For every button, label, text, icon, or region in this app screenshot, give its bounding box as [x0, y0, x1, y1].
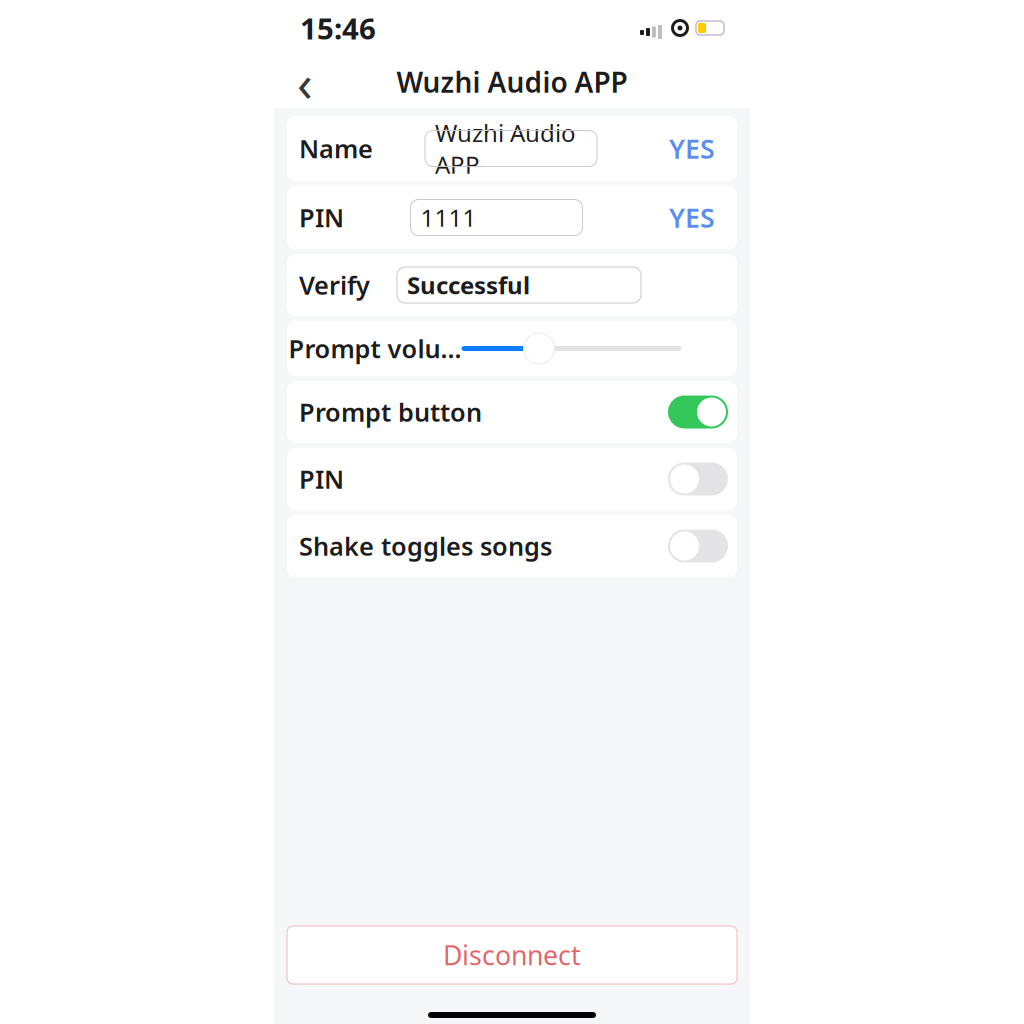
staticText: Prompt volu...	[288, 332, 461, 365]
staticText: 1111	[420, 202, 476, 233]
staticText: Name	[299, 132, 373, 165]
staticText: PIN	[299, 462, 344, 496]
button[interactable]: Shake toggles songs	[287, 515, 737, 577]
staticText: YES	[669, 200, 715, 235]
button[interactable]: PIN	[287, 186, 737, 249]
staticText: Disconnect	[443, 937, 581, 973]
staticText: Shake toggles songs	[299, 529, 552, 563]
staticText: ‹	[297, 48, 313, 116]
staticText: Wuzhi Audio APP	[435, 117, 576, 180]
button[interactable]: Back	[282, 59, 328, 105]
button[interactable]: Disconnect	[287, 926, 737, 984]
staticText: Successful	[407, 269, 530, 301]
staticText: YES	[669, 131, 715, 166]
button[interactable]: YES	[649, 195, 735, 239]
button[interactable]: Disabled	[667, 524, 729, 568]
button[interactable]: Enabled	[667, 390, 729, 434]
staticText: Wuzhi Audio APP	[396, 63, 627, 101]
button[interactable]: Prompt button	[287, 381, 737, 443]
staticText: Verify	[299, 268, 370, 302]
staticText: 15:46	[300, 8, 376, 47]
button[interactable]: YES	[649, 126, 735, 170]
staticText: PIN	[299, 201, 344, 234]
staticText: Prompt button	[299, 395, 482, 429]
button[interactable]: Disabled	[667, 457, 729, 501]
button[interactable]: PIN	[287, 448, 737, 510]
button[interactable]: Name	[287, 116, 737, 181]
